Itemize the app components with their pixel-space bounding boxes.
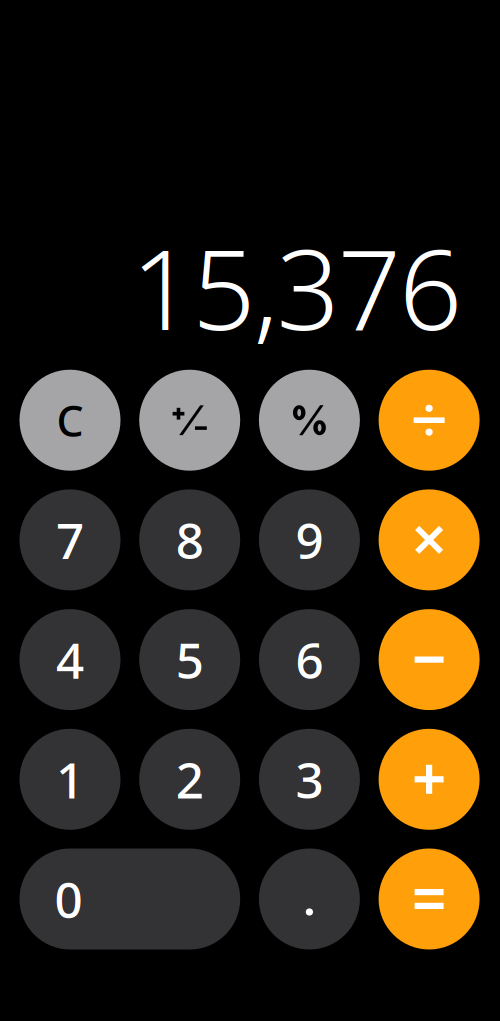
button[interactable]: Multiply (379, 489, 480, 590)
button[interactable]: 7 (19, 489, 120, 590)
button[interactable]: 6 (259, 609, 360, 710)
button[interactable]: Percent (259, 370, 360, 471)
staticText: 0 (54, 866, 82, 932)
staticText: C (56, 392, 83, 449)
button[interactable]: 0 (19, 848, 240, 949)
staticText: 3 (295, 746, 323, 812)
button[interactable]: Minus (379, 609, 480, 710)
button[interactable]: 2 (139, 729, 240, 830)
staticText: 2 (176, 746, 204, 812)
button[interactable]: Decimal point (259, 848, 360, 949)
button[interactable]: 3 (259, 729, 360, 830)
button[interactable]: Divide (379, 370, 480, 471)
button[interactable]: 4 (19, 609, 120, 710)
button[interactable]: Equals (379, 848, 480, 949)
staticText: 4 (56, 627, 84, 692)
staticText: 7 (56, 507, 84, 573)
button[interactable]: Plus (379, 729, 480, 830)
staticText: 8 (176, 507, 204, 573)
button[interactable]: C (19, 370, 120, 471)
button[interactable]: 5 (139, 609, 240, 710)
staticText: 5 (176, 627, 204, 692)
button[interactable]: Plus minus (139, 370, 240, 471)
staticText: 15,376 (131, 213, 462, 360)
button[interactable]: 8 (139, 489, 240, 590)
staticText: 6 (295, 627, 323, 692)
button[interactable]: 1 (19, 729, 120, 830)
staticText: 1 (56, 746, 84, 812)
staticText: 9 (295, 507, 323, 573)
button[interactable]: 9 (259, 489, 360, 590)
